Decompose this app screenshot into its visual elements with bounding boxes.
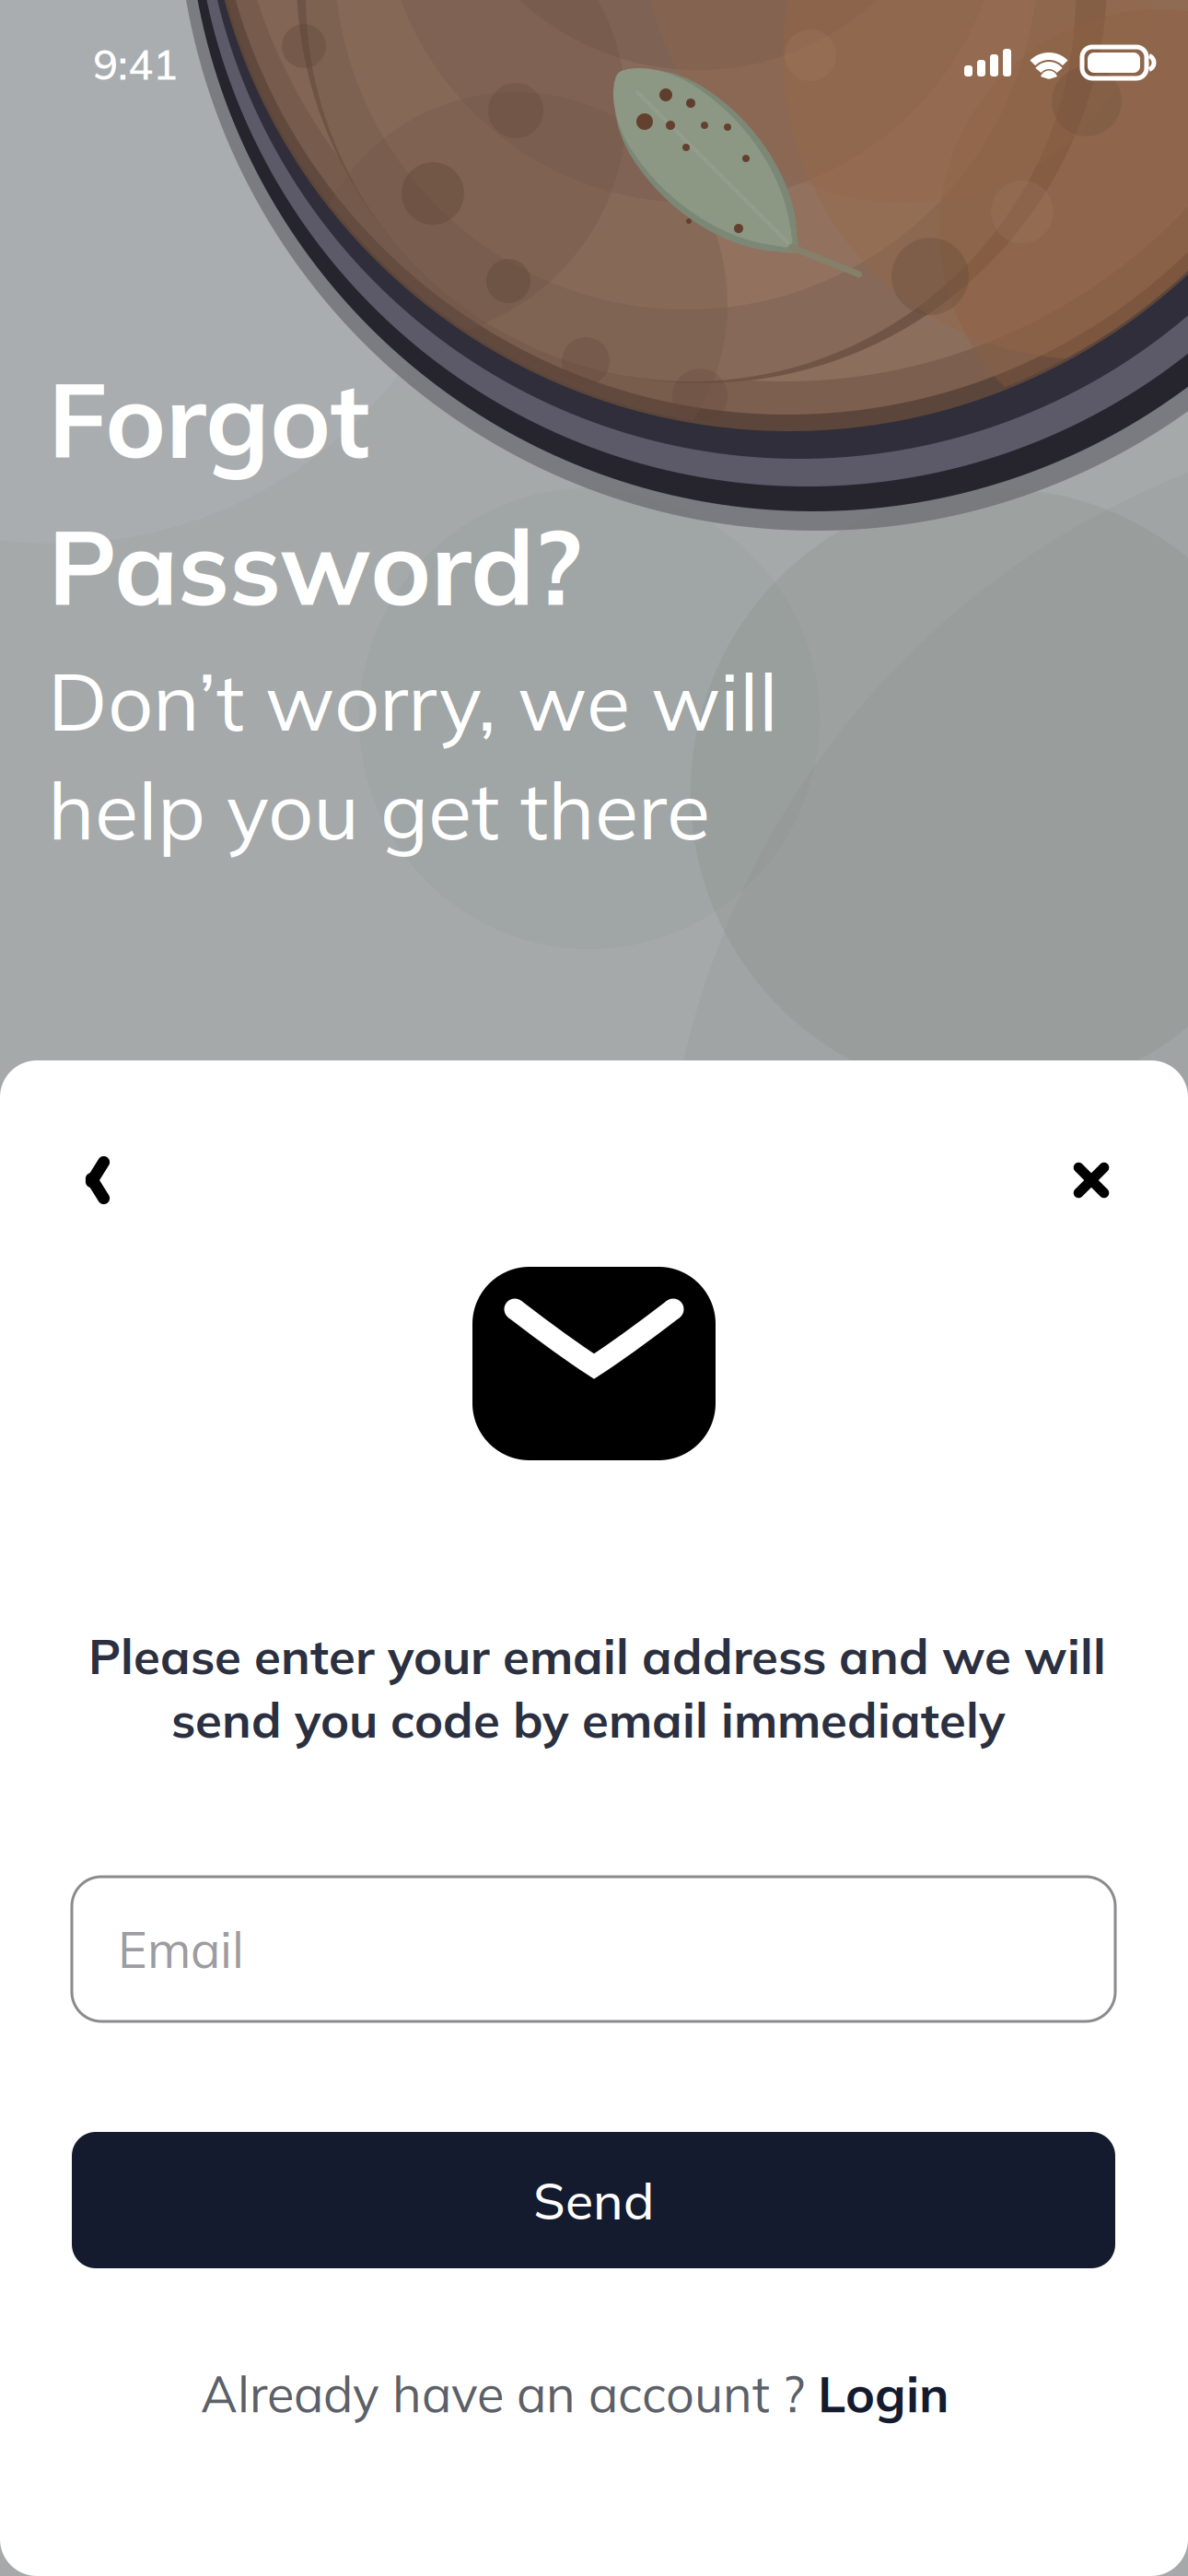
staticText: Please enter your email address and we w… <box>88 1625 1106 1686</box>
staticText: Forgot <box>48 354 369 483</box>
button[interactable]: Back <box>53 1136 142 1224</box>
button[interactable]: Already have an account ? <box>168 2342 983 2445</box>
staticText: Email <box>118 1918 244 1980</box>
staticText: Send <box>533 2168 654 2232</box>
staticText: send you code by email immediately <box>171 1689 1006 1750</box>
staticText: Don’t worry, we will <box>48 650 778 751</box>
button[interactable]: Send <box>72 2132 1115 2268</box>
staticText: 9:41 <box>93 38 178 90</box>
staticText: Password? <box>48 501 582 631</box>
button[interactable]: Close <box>1047 1136 1136 1224</box>
button[interactable]: Email <box>72 1877 1115 2021</box>
staticText: Login <box>818 2362 949 2425</box>
staticText: Already have an account ? <box>201 2362 818 2425</box>
staticText: help you get there <box>48 759 710 859</box>
